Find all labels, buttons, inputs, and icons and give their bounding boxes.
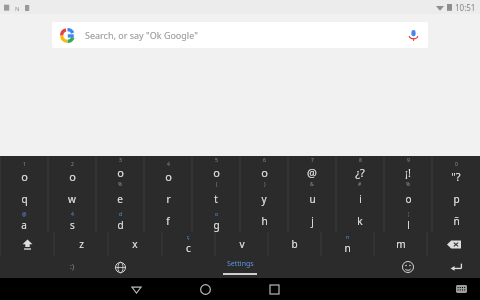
button[interactable]: Symbols <box>48 256 96 278</box>
button[interactable]: 4 <box>48 210 96 232</box>
staticText: o <box>69 169 76 184</box>
button[interactable]: ç <box>162 232 215 256</box>
button[interactable]: u <box>288 188 336 210</box>
staticText: f <box>166 214 170 228</box>
button[interactable]: Switch keyboard <box>448 278 474 300</box>
staticText: 5 <box>215 157 218 164</box>
button[interactable]: v <box>215 232 268 256</box>
staticText: 0 <box>455 161 458 168</box>
other: Voice search <box>407 29 420 42</box>
button[interactable]: Shift <box>0 232 54 256</box>
staticText: n <box>346 234 350 241</box>
staticText: o <box>117 165 124 180</box>
staticText: 9 <box>407 157 410 164</box>
staticText: 4 <box>167 161 170 168</box>
staticText: m <box>396 237 406 251</box>
button[interactable]: 1 <box>0 156 48 188</box>
button[interactable]: o <box>384 188 432 210</box>
staticText: # <box>358 181 362 188</box>
staticText: Settings <box>227 259 254 269</box>
staticText: g <box>213 218 220 232</box>
staticText: Search, or say "Ok Google" <box>85 29 198 41</box>
button[interactable]: o <box>192 210 240 232</box>
button[interactable]: Emoji <box>384 256 432 278</box>
staticText: v <box>239 237 245 251</box>
button[interactable]: 4 <box>144 156 192 188</box>
staticText: u <box>309 192 316 206</box>
staticText: p <box>453 192 460 206</box>
other: Google <box>60 28 75 43</box>
staticText: @ <box>22 211 27 218</box>
button[interactable]: 3 <box>96 156 144 188</box>
button[interactable]: b <box>268 232 321 256</box>
button[interactable]: Google <box>52 22 428 48</box>
staticText: % <box>406 181 411 188</box>
staticText: d <box>119 211 123 218</box>
staticText: 6 <box>263 157 266 164</box>
button[interactable]: 6 <box>240 156 288 188</box>
button[interactable]: ñ <box>432 210 480 232</box>
button[interactable]: f <box>144 210 192 232</box>
button[interactable]: e <box>96 188 144 210</box>
button[interactable]: k <box>336 210 384 232</box>
button[interactable]: Backspace <box>427 232 480 256</box>
button[interactable]: p <box>432 188 480 210</box>
staticText: c <box>186 241 191 255</box>
button[interactable]: z <box>54 232 108 256</box>
button[interactable]: Enter <box>432 256 480 278</box>
staticText: o <box>405 192 412 206</box>
button[interactable]: Home <box>192 278 218 300</box>
staticText: t <box>214 192 218 206</box>
button[interactable]: 9 <box>384 156 432 188</box>
button[interactable]: 5 <box>192 156 240 188</box>
staticText: o <box>215 211 219 218</box>
button[interactable]: ¦ <box>384 210 432 232</box>
button[interactable]: d <box>96 210 144 232</box>
staticText: ç <box>187 234 190 241</box>
staticText: ( <box>216 181 218 188</box>
button[interactable]: Recent apps <box>261 278 287 300</box>
button[interactable]: 2 <box>48 156 96 188</box>
button[interactable]: 8 <box>336 156 384 188</box>
staticText: o <box>261 165 268 180</box>
button[interactable]: Back <box>123 278 149 300</box>
staticText: l <box>407 218 410 232</box>
staticText: 7 <box>311 157 314 164</box>
staticText: 4 <box>71 211 74 218</box>
button[interactable]: w <box>48 188 96 210</box>
staticText: j <box>311 214 314 228</box>
staticText: b <box>291 237 298 251</box>
staticText: q <box>21 192 28 206</box>
staticText: a <box>21 218 27 232</box>
button[interactable]: y <box>240 188 288 210</box>
button[interactable]: r <box>144 188 192 210</box>
button[interactable]: n <box>321 232 374 256</box>
staticText: z <box>79 237 84 251</box>
staticText: 10:51 <box>455 2 476 13</box>
button[interactable]: q <box>0 188 48 210</box>
button[interactable]: h <box>240 210 288 232</box>
button[interactable]: m <box>374 232 427 256</box>
button[interactable]: Change language <box>96 256 144 278</box>
staticText: o <box>165 169 172 184</box>
staticText: N <box>15 5 20 11</box>
button[interactable]: j <box>288 210 336 232</box>
staticText: o <box>21 169 28 184</box>
staticText: d <box>117 218 124 232</box>
button[interactable]: t <box>192 188 240 210</box>
button[interactable]: 0 <box>432 156 480 188</box>
button[interactable]: i <box>336 188 384 210</box>
staticText: o <box>213 165 220 180</box>
staticText: n <box>344 241 351 255</box>
staticText: % <box>118 181 123 188</box>
button[interactable]: Settings <box>144 256 336 278</box>
staticText: ¡! <box>405 165 411 180</box>
button[interactable]: x <box>108 232 162 256</box>
button[interactable]: @ <box>0 210 48 232</box>
staticText: 1 <box>23 161 26 168</box>
button[interactable]: 7 <box>288 156 336 188</box>
staticText: ñ <box>453 214 460 228</box>
staticText: 8 <box>359 157 362 164</box>
